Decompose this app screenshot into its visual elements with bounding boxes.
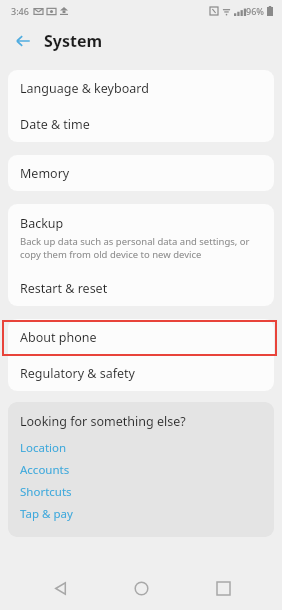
button[interactable]: Back	[8, 26, 38, 56]
staticText: Location	[20, 440, 67, 456]
staticText: Date & time	[20, 116, 90, 133]
button[interactable]: Recent apps	[201, 566, 245, 610]
button[interactable]: Restart & reset	[8, 270, 274, 306]
staticText: 3:46	[11, 5, 29, 17]
staticText: Backup	[20, 215, 64, 232]
staticText: Back up data such as personal data and s…	[20, 235, 250, 248]
button[interactable]: Memory	[8, 155, 274, 191]
staticText: System	[44, 30, 103, 52]
staticText: 96%	[246, 5, 264, 17]
staticText: Regulatory & safety	[20, 365, 135, 382]
staticText: About phone	[20, 329, 97, 346]
button[interactable]: Date & time	[8, 106, 274, 142]
button[interactable]: Shortcuts	[20, 481, 262, 503]
staticText: Tap & pay	[20, 506, 73, 522]
button[interactable]: Accounts	[20, 459, 262, 481]
staticText: Looking for something else?	[20, 413, 186, 430]
button[interactable]: Location	[20, 437, 262, 459]
button[interactable]	[2, 320, 277, 356]
button[interactable]: Language & keyboard	[8, 70, 274, 106]
staticText: Memory	[20, 165, 70, 182]
staticText: Shortcuts	[20, 484, 72, 500]
button[interactable]: Home	[119, 566, 163, 610]
button[interactable]: Backup	[8, 204, 274, 270]
button[interactable]: Back	[38, 566, 82, 610]
button[interactable]: Regulatory & safety	[8, 355, 274, 391]
button[interactable]: Tap & pay	[20, 503, 262, 525]
staticText: Language & keyboard	[20, 80, 149, 97]
staticText: Accounts	[20, 462, 70, 478]
button[interactable]: About phone	[8, 319, 274, 355]
staticText: Restart & reset	[20, 280, 108, 297]
staticText: copy them from old device to new device	[20, 248, 202, 261]
